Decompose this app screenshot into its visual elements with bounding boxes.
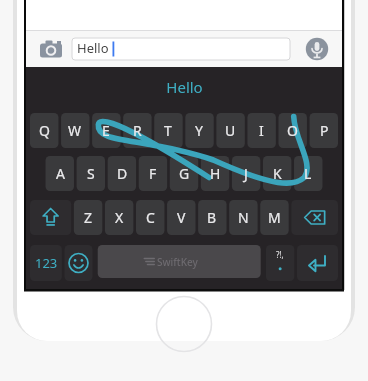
staticText: I xyxy=(259,121,264,140)
staticText: G xyxy=(179,164,190,183)
button[interactable]: G xyxy=(170,156,198,191)
staticText: K xyxy=(273,164,282,183)
staticText: U xyxy=(225,121,236,140)
button[interactable]: Home xyxy=(156,296,212,352)
button[interactable]: X xyxy=(105,200,133,235)
button[interactable]: Shift xyxy=(30,200,71,235)
button[interactable]: Punctuation xyxy=(266,245,294,281)
button[interactable]: U xyxy=(216,113,244,148)
staticText: Q xyxy=(39,121,50,140)
button[interactable]: O xyxy=(278,113,306,148)
staticText: S xyxy=(87,164,95,183)
button[interactable]: Q xyxy=(30,113,58,148)
button[interactable]: Space xyxy=(98,245,261,278)
button[interactable]: V xyxy=(167,200,195,235)
staticText: Hello xyxy=(77,39,109,57)
staticText: M xyxy=(268,208,281,227)
button[interactable]: N xyxy=(229,200,257,235)
button[interactable]: L xyxy=(294,156,322,191)
staticText: F xyxy=(149,164,157,183)
button[interactable]: F xyxy=(139,156,167,191)
button[interactable]: H xyxy=(201,156,229,191)
button[interactable]: C xyxy=(136,200,164,235)
staticText: R xyxy=(133,121,142,140)
staticText: ?!, xyxy=(276,249,284,260)
staticText: 123 xyxy=(35,254,58,272)
staticText: L xyxy=(304,164,312,183)
staticText: Y xyxy=(195,121,203,140)
staticText: D xyxy=(117,164,128,183)
button[interactable]: K xyxy=(263,156,291,191)
staticText: B xyxy=(207,208,217,227)
staticText: J xyxy=(244,164,248,183)
staticText: W xyxy=(68,121,82,140)
button[interactable]: Voice input xyxy=(305,37,329,61)
button[interactable]: Z xyxy=(74,200,102,235)
staticText: H xyxy=(210,164,221,183)
button[interactable]: E xyxy=(92,113,120,148)
button[interactable]: Y xyxy=(185,113,213,148)
staticText: E xyxy=(102,121,110,140)
button[interactable]: A xyxy=(46,156,74,191)
button[interactable]: B xyxy=(198,200,226,235)
staticText: V xyxy=(177,208,186,227)
staticText: P xyxy=(320,121,329,140)
button[interactable]: M xyxy=(260,200,288,235)
button[interactable]: Camera xyxy=(38,38,64,60)
button[interactable] xyxy=(72,38,290,60)
staticText: N xyxy=(238,208,249,227)
staticText: T xyxy=(164,121,172,140)
staticText: C xyxy=(146,208,155,227)
button[interactable]: T xyxy=(154,113,182,148)
staticText: SwiftKey xyxy=(157,255,198,269)
button[interactable]: S xyxy=(77,156,105,191)
button[interactable]: Enter xyxy=(297,245,338,281)
button[interactable]: Backspace xyxy=(291,200,338,235)
button[interactable]: D xyxy=(108,156,136,191)
button[interactable]: J xyxy=(232,156,260,191)
button[interactable]: W xyxy=(61,113,89,148)
button[interactable]: R xyxy=(123,113,151,148)
staticText: Hello xyxy=(166,77,203,97)
button[interactable]: I xyxy=(247,113,275,148)
button[interactable]: Emoji xyxy=(64,245,92,281)
button[interactable]: 123 xyxy=(30,245,62,281)
staticText: A xyxy=(56,164,65,183)
staticText: X xyxy=(115,208,124,227)
staticText: O xyxy=(287,121,298,140)
button[interactable]: Hello xyxy=(26,76,342,98)
staticText: Z xyxy=(84,208,93,227)
button[interactable]: P xyxy=(310,113,338,148)
